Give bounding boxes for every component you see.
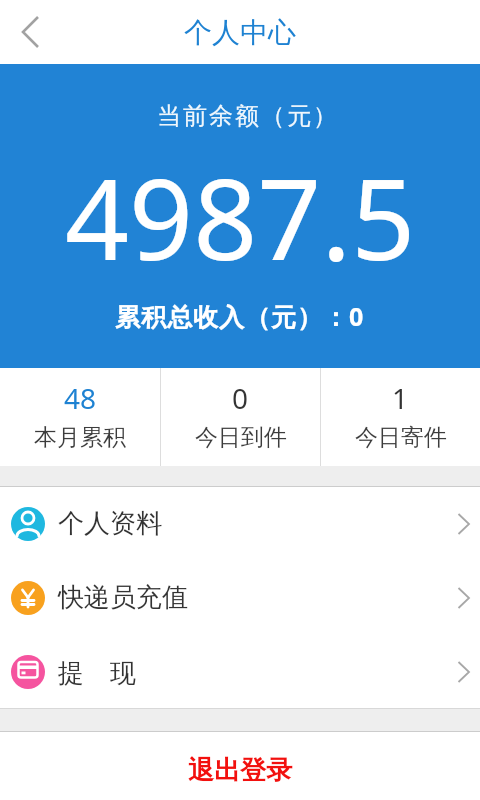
staticText: 退出登录 [188,754,292,787]
button[interactable]: 48 [0,368,160,466]
button[interactable]: 0 [161,368,320,466]
button[interactable]: 个人资料 [0,487,480,560]
staticText: 个人资料 [58,507,162,540]
button[interactable]: 1 [321,368,480,466]
staticText: 提 现 [58,654,136,690]
staticText: 今日寄件 [355,423,447,452]
staticText: 当前余额（元） [156,101,338,131]
staticText: 个人中心 [184,15,296,50]
staticText: 累积总收入（元）：0 [115,299,365,333]
button[interactable]: 快递员充值 [0,561,480,634]
button[interactable]: 退出登录 [188,754,292,787]
button[interactable]: 提 现 [0,635,480,708]
staticText: 1 [392,379,409,417]
staticText: 0 [232,379,249,417]
staticText: 本月累积 [34,423,126,452]
staticText: 快递员充值 [58,581,188,614]
staticText: 48 [64,379,97,417]
button[interactable] [0,4,56,60]
staticText: 4987.5 [65,140,416,293]
staticText: 今日到件 [195,423,287,452]
